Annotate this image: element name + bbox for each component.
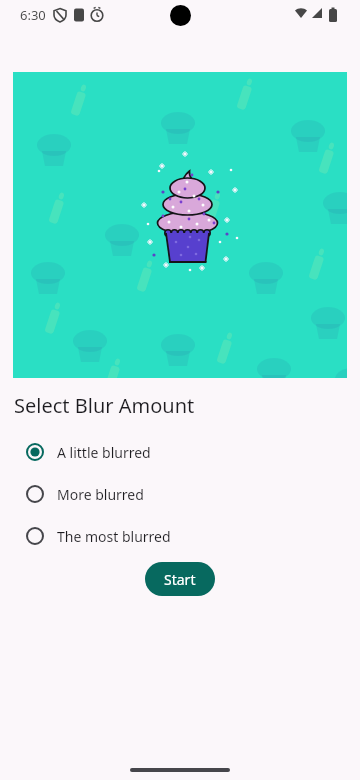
staticText: Select Blur Amount [14, 392, 195, 419]
button[interactable]: The most blurred [0, 515, 360, 557]
staticText: The most blurred [57, 527, 171, 546]
button[interactable]: Start [145, 562, 215, 596]
staticText: Start [164, 570, 196, 589]
staticText: More blurred [57, 485, 144, 504]
button[interactable]: A little blurred [0, 431, 360, 473]
staticText: A little blurred [57, 443, 151, 462]
button[interactable]: More blurred [0, 473, 360, 515]
staticText: 6:30 [20, 6, 46, 24]
